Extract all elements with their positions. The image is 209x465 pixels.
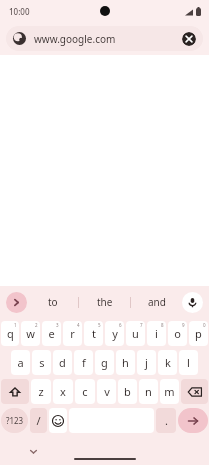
button[interactable]: a [11,350,30,375]
button[interactable]: Emoji [49,408,67,433]
staticText: a [17,355,24,370]
staticText: u [132,326,139,341]
button[interactable]: p [189,321,208,346]
staticText: j [145,355,148,370]
staticText: t [92,326,96,341]
button[interactable]: . [156,408,176,433]
staticText: h [122,355,129,370]
button[interactable]: Site info [6,26,203,51]
button[interactable]: to [27,286,78,318]
button[interactable]: x [53,379,73,404]
staticText: r [70,326,75,341]
staticText: v [104,384,110,399]
staticText: ?123 [6,415,24,426]
button[interactable]: m [160,379,179,404]
staticText: / [36,413,41,428]
button[interactable]: l [179,350,198,375]
staticText: d [59,355,66,370]
button[interactable]: Backspace [181,379,208,404]
button[interactable]: s [32,350,51,375]
staticText: f [82,355,86,370]
staticText: m [164,384,175,399]
staticText: 9 [182,322,185,328]
button[interactable]: t [84,321,103,346]
button[interactable]: Clear [182,32,196,46]
staticText: . [165,413,168,428]
staticText: y [112,326,118,341]
button[interactable]: Voice input [182,292,203,313]
button[interactable]: the [79,286,130,318]
button[interactable]: u [126,321,145,346]
staticText: 5 [98,322,101,328]
staticText: w [26,326,35,341]
button[interactable]: y [105,321,124,346]
staticText: p [195,326,202,341]
button[interactable]: z [31,379,51,404]
other: Site info [13,32,26,45]
button[interactable]: w [21,321,40,346]
button[interactable]: Go [178,408,208,433]
staticText: n [145,384,152,399]
staticText: k [165,355,171,370]
button[interactable]: Hide keyboard [26,444,40,458]
staticText: e [48,326,55,341]
staticText: to [48,295,58,309]
staticText: b [124,384,131,399]
staticText: g [101,355,108,370]
staticText: c [82,384,88,399]
staticText: s [39,355,45,370]
button[interactable]: b [118,379,137,404]
button[interactable]: More suggestions [6,292,27,313]
staticText: 8 [161,322,164,328]
button[interactable]: e [42,321,61,346]
staticText: and [148,295,166,309]
button[interactable]: v [97,379,116,404]
button[interactable]: r [63,321,82,346]
staticText: x [60,384,66,399]
staticText: www.google.com [34,32,116,46]
staticText: 7 [140,322,143,328]
staticText: 0 [203,322,206,328]
staticText: 4 [77,322,80,328]
button[interactable]: ?123 [1,408,28,433]
button[interactable]: n [139,379,158,404]
button[interactable]: d [53,350,72,375]
button[interactable]: k [158,350,177,375]
staticText: the [97,295,113,309]
button[interactable]: c [75,379,95,404]
staticText: 10:00 [9,6,30,17]
staticText: o [174,326,181,341]
staticText: 1 [14,322,17,328]
button[interactable]: Shift [1,379,29,404]
staticText: q [7,326,14,341]
button[interactable]: and [131,286,182,318]
button[interactable]: g [95,350,114,375]
button[interactable]: h [116,350,135,375]
staticText: i [155,326,158,341]
button[interactable]: q [1,321,19,346]
staticText: 2 [35,322,38,328]
button[interactable]: i [147,321,166,346]
button[interactable]: j [137,350,156,375]
staticText: 3 [56,322,59,328]
staticText: 6 [119,322,122,328]
button[interactable]: / [30,408,47,433]
staticText: z [38,384,44,399]
button[interactable]: o [168,321,187,346]
staticText: l [187,355,190,370]
button[interactable]: f [74,350,93,375]
